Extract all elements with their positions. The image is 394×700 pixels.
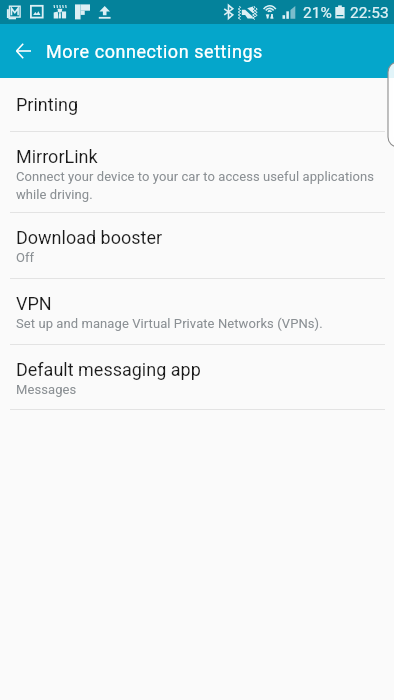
button[interactable]: Default messaging app	[0, 344, 394, 409]
staticText: Default messaging app	[16, 359, 201, 380]
staticText: Printing	[16, 94, 79, 115]
staticText: More connection settings	[46, 41, 263, 62]
staticText: Messages	[16, 382, 77, 397]
button[interactable]: MirrorLink	[0, 131, 394, 212]
staticText: Off	[16, 250, 35, 265]
button[interactable]: VPN	[0, 278, 394, 344]
staticText: VPN	[16, 293, 52, 314]
staticText: Set up and manage Virtual Private Networ…	[16, 316, 323, 331]
staticText: Connect your device to your car to acces…	[16, 169, 375, 202]
button[interactable]: Download booster	[0, 212, 394, 278]
button[interactable]: Printing	[0, 78, 394, 131]
staticText: 22:53	[350, 4, 389, 22]
staticText: Download booster	[16, 227, 163, 248]
staticText: MirrorLink	[16, 146, 98, 167]
staticText: 21%	[303, 4, 332, 22]
button[interactable]: Back	[0, 24, 46, 78]
